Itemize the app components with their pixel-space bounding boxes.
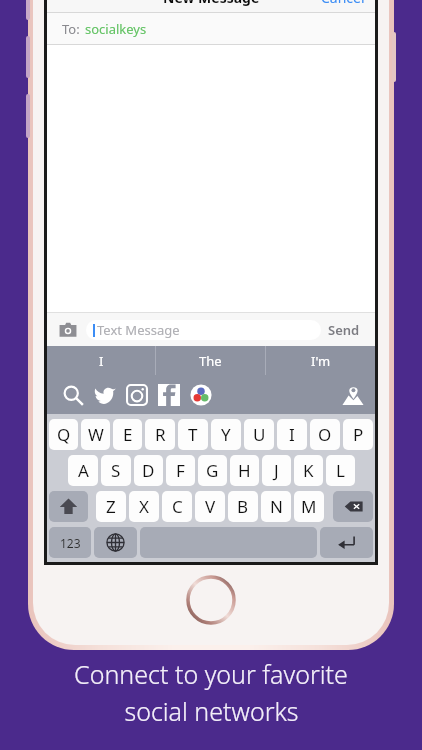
staticText: R [155,423,166,446]
staticText: O [318,423,332,446]
button[interactable]: H [230,455,259,486]
button[interactable]: P [343,419,373,450]
button[interactable]: Photos [185,379,217,411]
staticText: T [188,423,198,446]
staticText: F [176,459,185,482]
button[interactable]: K [294,455,323,486]
staticText: X [139,495,149,518]
button[interactable]: W [81,419,110,450]
staticText: Q [57,423,71,446]
button[interactable]: Y [211,419,241,450]
button[interactable]: Q [49,419,78,450]
button[interactable]: S [101,455,131,486]
button[interactable]: Emoji keyboard [94,527,137,558]
staticText: M [301,495,317,518]
staticText: Y [221,423,231,446]
button[interactable]: V [195,491,225,522]
staticText: 123 [60,535,81,551]
button[interactable]: X [129,491,159,522]
button[interactable]: To: [47,13,375,44]
staticText: To: [62,20,80,38]
button[interactable]: C [162,491,192,522]
button[interactable]: L [326,455,355,486]
staticText: socialkeys [85,20,147,38]
staticText: I [289,423,295,446]
staticText: S [111,459,121,482]
button[interactable]: Send [321,317,367,343]
button[interactable]: Search [57,379,89,411]
staticText: Z [106,495,116,518]
staticText: V [205,495,216,518]
staticText: P [353,423,364,446]
staticText: W [88,423,104,446]
button[interactable]: J [262,455,291,486]
staticText: Send [328,321,360,339]
button[interactable]: Text Message [86,320,321,340]
button[interactable]: B [228,491,258,522]
staticText: G [206,459,219,482]
button[interactable]: O [310,419,340,450]
staticText: L [336,459,345,482]
staticText: A [78,459,89,482]
staticText: B [237,495,249,518]
button[interactable]: N [261,491,291,522]
staticText: U [253,423,266,446]
staticText: I [99,352,104,370]
button[interactable]: E [113,419,142,450]
button[interactable]: D [134,455,163,486]
staticText: J [274,459,279,482]
staticText: Text Message [97,321,180,339]
staticText: New Message [163,0,260,7]
staticText: N [270,495,283,518]
staticText: K [303,459,314,482]
button[interactable]: Instagram [121,379,153,411]
button[interactable]: I'm [266,346,375,375]
staticText: H [238,459,251,482]
button[interactable]: A [68,455,98,486]
staticText: The [199,352,222,370]
staticText: E [123,423,133,446]
button[interactable]: The [156,346,265,375]
staticText: C [172,495,183,518]
button[interactable]: Return [320,527,373,558]
button[interactable]: Shift [49,491,88,522]
staticText: I'm [311,352,331,370]
button[interactable]: Twitter [89,379,121,411]
button[interactable]: T [178,419,208,450]
button[interactable]: U [244,419,274,450]
button[interactable]: F [166,455,195,486]
button[interactable]: M [294,491,324,522]
staticText: Cancel [321,0,365,7]
button[interactable]: I [47,346,155,375]
button[interactable]: Backspace [333,491,373,522]
button[interactable]: Facebook [153,379,185,411]
button[interactable]: Camera [55,317,81,343]
button[interactable]: G [198,455,227,486]
button[interactable]: I [277,419,307,450]
button[interactable]: Cancel [311,0,375,11]
staticText: D [142,459,155,482]
staticText: Connect to your favorite [74,657,348,691]
staticText: social networks [124,694,299,728]
button[interactable]: Map [337,379,369,411]
button[interactable]: R [145,419,175,450]
button[interactable]: 123 [49,527,91,558]
button[interactable]: Z [96,491,126,522]
